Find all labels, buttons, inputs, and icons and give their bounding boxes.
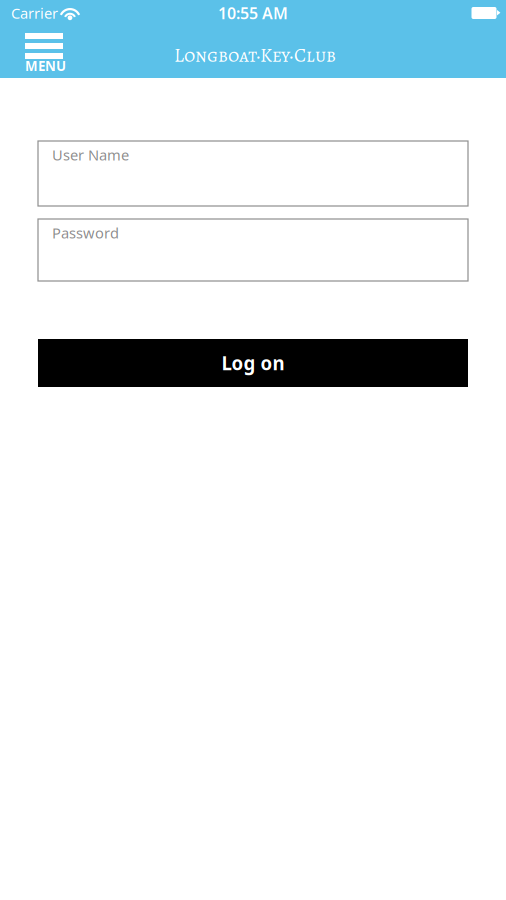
staticText: Log on [221,351,284,375]
staticText: Carrier [11,3,58,23]
staticText: 10:55 AM [218,2,288,24]
staticText: User Name [52,145,129,164]
button[interactable]: Menu [25,33,85,73]
button[interactable]: Password [38,219,468,281]
button[interactable]: Log on [38,339,468,387]
staticText: MENU [25,57,66,75]
staticText: Password [52,223,119,242]
staticText: Longboat·Key·Club [174,42,336,68]
button[interactable]: User Name [38,141,468,206]
